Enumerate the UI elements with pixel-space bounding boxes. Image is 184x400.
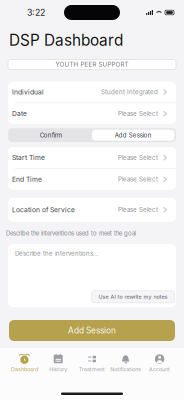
button[interactable]: Use AI to rewrite my notes bbox=[91, 291, 174, 303]
staticText: Dashboard bbox=[11, 366, 38, 372]
button[interactable]: YOUTH PEER SUPPORT bbox=[8, 60, 176, 70]
staticText: Describe the interventions... bbox=[15, 250, 99, 257]
staticText: Start Time bbox=[12, 154, 45, 162]
button[interactable]: History bbox=[41, 353, 75, 373]
button[interactable]: Add Session bbox=[92, 130, 174, 141]
button[interactable]: Add Session bbox=[9, 320, 175, 341]
staticText: Add Session bbox=[68, 325, 116, 335]
button[interactable]: Confirm bbox=[9, 130, 92, 141]
button[interactable]: Treatment bbox=[75, 353, 109, 373]
staticText: Add Session bbox=[115, 131, 152, 139]
staticText: Location of Service bbox=[12, 206, 75, 214]
staticText: Use AI to rewrite my notes bbox=[98, 293, 167, 300]
button[interactable]: Individual bbox=[8, 82, 176, 103]
button[interactable]: End Time bbox=[8, 169, 176, 190]
staticText: Please Select bbox=[118, 154, 158, 161]
staticText: Please Select bbox=[118, 175, 158, 183]
staticText: Date bbox=[12, 110, 27, 118]
staticText: DSP Dashboard bbox=[9, 31, 123, 50]
staticText: End Time bbox=[12, 175, 42, 183]
staticText: Account bbox=[149, 366, 170, 372]
staticText: Please Select bbox=[118, 206, 158, 213]
staticText: Notifications bbox=[110, 366, 141, 372]
button[interactable]: Dashboard bbox=[7, 353, 41, 373]
staticText: Describe the interventions used to meet … bbox=[6, 230, 136, 237]
button[interactable]: Notifications bbox=[109, 353, 143, 373]
staticText: Confirm bbox=[40, 131, 62, 139]
staticText: YOUTH PEER SUPPORT bbox=[55, 61, 128, 68]
staticText: Treatment bbox=[79, 366, 105, 372]
button[interactable]: Location of Service bbox=[8, 198, 176, 222]
button[interactable]: Date bbox=[8, 103, 176, 124]
staticText: Individual bbox=[12, 88, 44, 96]
staticText: Please Select bbox=[118, 110, 158, 117]
button[interactable]: Account bbox=[143, 353, 176, 373]
staticText: 3:22 bbox=[27, 7, 45, 18]
staticText: History bbox=[49, 366, 67, 372]
staticText: Student Integrated bbox=[101, 88, 158, 96]
button[interactable]: Start Time bbox=[8, 147, 176, 168]
